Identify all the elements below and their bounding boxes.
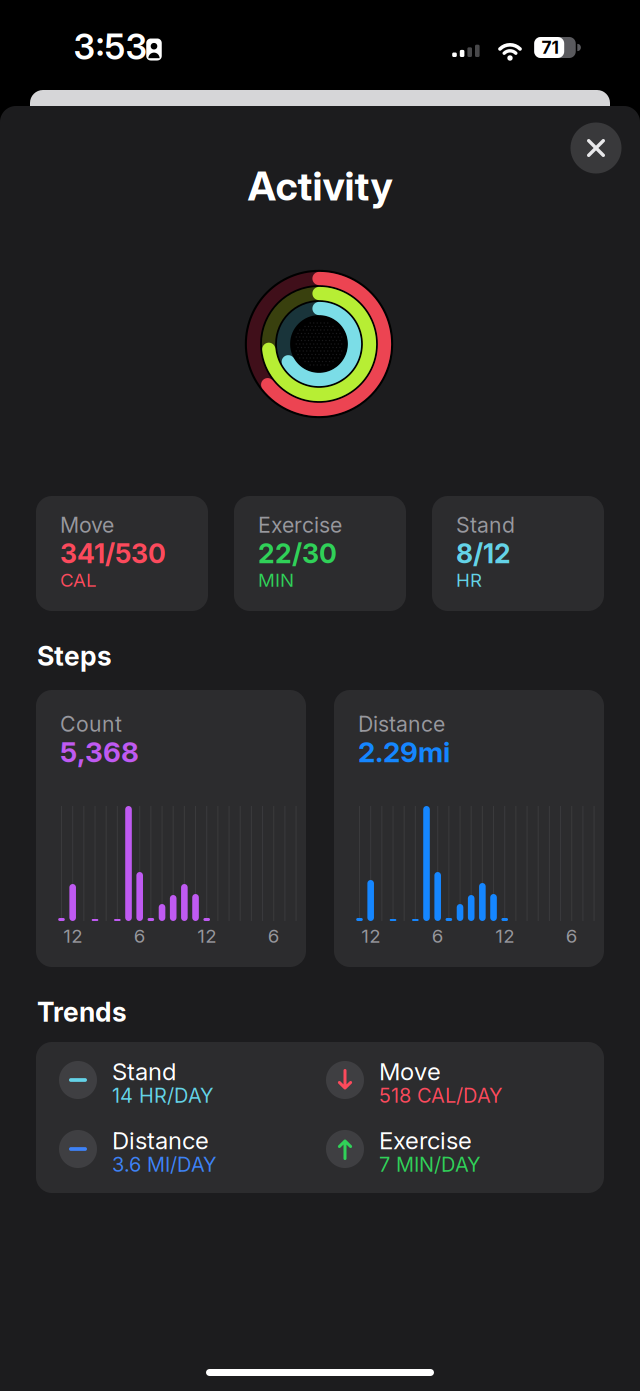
staticText: 6 — [268, 925, 280, 947]
staticText: 3:53 — [73, 27, 147, 67]
staticText: Move — [60, 512, 114, 538]
staticText: 6 — [566, 925, 578, 947]
staticText: 22/30 — [258, 538, 337, 569]
staticText: Steps — [37, 640, 112, 672]
staticText: 12 — [495, 925, 514, 947]
staticText: 7 MIN/DAY — [379, 1153, 481, 1176]
button[interactable]: Close — [570, 122, 621, 173]
staticText: 71 — [541, 37, 558, 58]
staticText: Exercise — [258, 512, 342, 538]
staticText: Count — [60, 711, 122, 737]
staticText: 3.6 MI/DAY — [112, 1153, 217, 1176]
staticText: 6 — [432, 925, 444, 947]
staticText: Distance — [358, 711, 445, 737]
staticText: Exercise — [379, 1126, 472, 1155]
staticText: 12 — [197, 925, 216, 947]
staticText: Move — [379, 1057, 441, 1086]
staticText: MIN — [258, 569, 294, 591]
staticText: 518 CAL/DAY — [379, 1084, 503, 1107]
staticText: Distance — [112, 1126, 209, 1155]
staticText: Stand — [112, 1057, 176, 1086]
staticText: 12 — [361, 925, 380, 947]
staticText: 8/12 — [456, 538, 511, 569]
staticText: Activity — [247, 162, 392, 210]
staticText: 6 — [134, 925, 146, 947]
staticText: 341/530 — [60, 538, 166, 569]
staticText: CAL — [60, 569, 97, 591]
staticText: HR — [456, 569, 482, 591]
staticText: 5,368 — [60, 735, 139, 768]
staticText: 2.29mi — [358, 735, 450, 768]
staticText: Trends — [37, 996, 127, 1028]
staticText: Stand — [456, 512, 515, 538]
staticText: 14 HR/DAY — [112, 1084, 214, 1107]
staticText: 12 — [63, 925, 82, 947]
